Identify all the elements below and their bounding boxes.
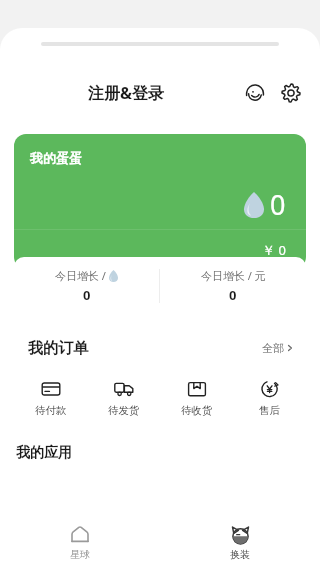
staticText: 我的订单 — [28, 339, 88, 358]
button[interactable]: 待付款 — [14, 368, 87, 426]
button[interactable]: 我的蛋蛋 — [14, 134, 306, 269]
button[interactable]: 待发货 — [87, 368, 160, 426]
staticText: 星球 — [70, 548, 90, 561]
staticText: 今日增长 / — [55, 268, 106, 283]
staticText: 注册&登录 — [88, 82, 165, 104]
button[interactable]: 今日增长 / — [14, 268, 159, 304]
staticText: ￥ 0 — [262, 241, 286, 259]
staticText: 换装 — [230, 548, 250, 561]
button[interactable]: 售后 — [233, 368, 306, 426]
button[interactable]: 待收货 — [160, 368, 233, 426]
staticText: 0 — [229, 286, 237, 304]
staticText: 售后 — [259, 404, 280, 417]
staticText: 今日增长 / 元 — [201, 268, 266, 283]
button[interactable]: 星球 — [0, 516, 160, 568]
staticText: 待付款 — [35, 404, 67, 417]
staticText: 待收货 — [181, 404, 213, 417]
button[interactable]: Customer service — [240, 78, 270, 108]
staticText: 我的应用 — [16, 444, 72, 462]
staticText: 0 — [270, 186, 286, 223]
staticText: 我的蛋蛋 — [30, 150, 82, 166]
button[interactable]: 换装 — [160, 516, 320, 568]
button[interactable]: Settings — [276, 78, 306, 108]
button[interactable]: 全部 — [262, 341, 294, 355]
button[interactable]: 注册&登录 — [88, 82, 165, 104]
staticText: 0 — [83, 286, 91, 304]
staticText: 全部 — [262, 341, 284, 355]
button[interactable]: 今日增长 / 元 — [160, 268, 306, 304]
staticText: 待发货 — [108, 404, 140, 417]
